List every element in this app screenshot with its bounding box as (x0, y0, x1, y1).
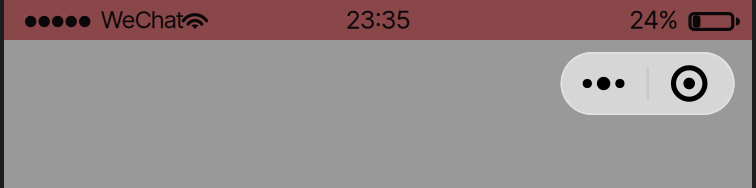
button[interactable]: More (561, 52, 647, 115)
staticText: 23:35 (346, 4, 410, 35)
staticText: WeChat (101, 5, 184, 34)
button[interactable]: Close mini program (649, 52, 735, 115)
staticText: 24% (629, 4, 677, 35)
